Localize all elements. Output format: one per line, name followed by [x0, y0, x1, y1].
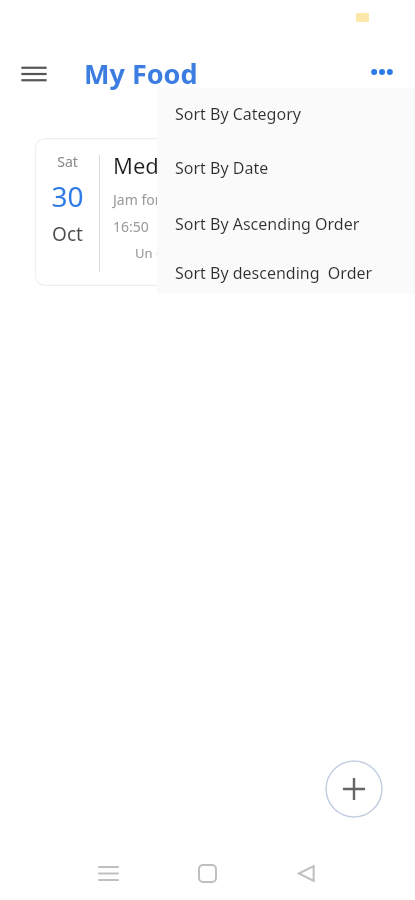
- staticText: Un Categorized: [135, 244, 230, 262]
- staticText: My Food: [84, 55, 198, 92]
- button[interactable]: Sort By Ascending Order: [157, 196, 415, 252]
- staticText: 16:50: [113, 217, 149, 236]
- button[interactable]: Recent apps: [88, 853, 128, 893]
- button[interactable]: Add food: [325, 760, 383, 818]
- staticText: Sort By descending Order: [175, 262, 373, 284]
- button[interactable]: Back: [286, 853, 326, 893]
- staticText: Sort By Category: [175, 103, 301, 125]
- staticText: Jam for cold: [113, 190, 192, 209]
- staticText: Sat: [57, 152, 78, 171]
- staticText: Sort By Date: [175, 157, 269, 179]
- button[interactable]: Sort By descending Order: [157, 252, 415, 294]
- staticText: Medicine: [113, 150, 207, 180]
- button[interactable]: Sort By Category: [157, 88, 415, 140]
- button[interactable]: Sort By Date: [157, 140, 415, 196]
- staticText: 30: [51, 177, 84, 215]
- button[interactable]: Sat: [35, 138, 335, 286]
- staticText: Oct: [52, 221, 83, 247]
- staticText: Sort By Ascending Order: [175, 213, 360, 235]
- button[interactable]: More options: [360, 50, 404, 94]
- button[interactable]: Home: [187, 853, 227, 893]
- button[interactable]: Open navigation drawer: [12, 52, 56, 96]
